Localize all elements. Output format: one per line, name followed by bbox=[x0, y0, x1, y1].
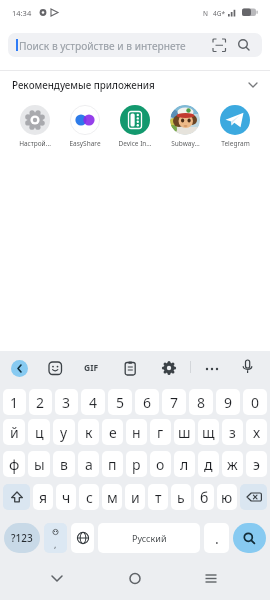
button[interactable]: б bbox=[194, 484, 214, 510]
button[interactable]: г bbox=[150, 419, 171, 445]
staticText: 9 bbox=[224, 393, 233, 412]
button[interactable]: ь bbox=[171, 484, 191, 510]
button[interactable]: EasyShare bbox=[60, 100, 110, 155]
staticText: у bbox=[60, 423, 68, 442]
button[interactable]: у bbox=[53, 419, 75, 445]
button[interactable]: ю bbox=[217, 484, 237, 510]
button[interactable]: 1 bbox=[3, 389, 26, 415]
button[interactable]: в bbox=[53, 451, 75, 477]
staticText: г bbox=[157, 423, 164, 442]
button[interactable]: 7 bbox=[162, 389, 186, 415]
staticText: Subway... bbox=[171, 139, 200, 148]
button[interactable]: Device In... bbox=[110, 100, 160, 155]
button[interactable] bbox=[240, 359, 255, 376]
staticText: Telegram bbox=[221, 139, 250, 148]
button[interactable]: э bbox=[246, 451, 267, 477]
staticText: х bbox=[253, 423, 261, 442]
button[interactable]: я bbox=[33, 484, 53, 510]
button[interactable]: с bbox=[79, 484, 99, 510]
button[interactable] bbox=[123, 361, 138, 376]
button[interactable]: 5 bbox=[108, 389, 132, 415]
button[interactable]: и bbox=[125, 484, 145, 510]
button[interactable]: ф bbox=[3, 451, 25, 477]
staticText: 8 bbox=[197, 393, 206, 412]
button[interactable]: д bbox=[198, 451, 219, 477]
staticText: 2 bbox=[36, 393, 45, 412]
staticText: 7 bbox=[170, 393, 179, 412]
button[interactable]: х bbox=[246, 419, 267, 445]
staticText: 14:34 bbox=[12, 8, 32, 18]
button[interactable]: ы bbox=[28, 451, 50, 477]
button[interactable] bbox=[203, 360, 221, 378]
staticText: , bbox=[54, 538, 57, 550]
button[interactable] bbox=[240, 484, 267, 510]
button[interactable]: 0 bbox=[243, 389, 267, 415]
staticText: ж bbox=[227, 455, 238, 474]
staticText: и bbox=[131, 488, 140, 507]
button[interactable]: 8 bbox=[189, 389, 213, 415]
staticText: 4 bbox=[89, 393, 98, 412]
staticText: 5 bbox=[116, 393, 125, 412]
button[interactable] bbox=[161, 360, 177, 376]
button[interactable]: 3 bbox=[55, 389, 78, 415]
staticText: ь bbox=[177, 488, 185, 507]
button[interactable]: 6 bbox=[135, 389, 159, 415]
button[interactable]: к bbox=[78, 419, 99, 445]
staticText: н bbox=[132, 423, 141, 442]
button[interactable] bbox=[47, 568, 67, 588]
button[interactable]: 9 bbox=[216, 389, 240, 415]
button[interactable]: н bbox=[126, 419, 147, 445]
staticText: 3 bbox=[62, 393, 71, 412]
staticText: ц bbox=[35, 423, 44, 442]
button[interactable]: , bbox=[44, 523, 67, 553]
button[interactable]: ж bbox=[222, 451, 243, 477]
staticText: й bbox=[10, 423, 19, 442]
staticText: 4G* bbox=[213, 9, 226, 18]
button[interactable]: Русский bbox=[98, 523, 200, 553]
button[interactable]: щ bbox=[198, 419, 219, 445]
button[interactable]: Поиск в устройстве и в интернете bbox=[8, 33, 262, 57]
button[interactable] bbox=[48, 361, 63, 376]
staticText: а bbox=[85, 455, 93, 474]
button[interactable]: з bbox=[222, 419, 243, 445]
button[interactable]: о bbox=[150, 451, 171, 477]
button[interactable] bbox=[3, 484, 30, 510]
button[interactable]: м bbox=[102, 484, 122, 510]
button[interactable]: р bbox=[126, 451, 147, 477]
button[interactable]: ц bbox=[28, 419, 50, 445]
staticText: о bbox=[156, 455, 165, 474]
button[interactable]: ч bbox=[56, 484, 76, 510]
staticText: б bbox=[200, 488, 209, 507]
button[interactable]: л bbox=[174, 451, 195, 477]
button[interactable]: ш bbox=[174, 419, 195, 445]
staticText: . bbox=[215, 529, 219, 548]
button[interactable]: 4 bbox=[81, 389, 105, 415]
staticText: Device In... bbox=[118, 139, 152, 148]
staticText: ?123 bbox=[11, 531, 33, 545]
button[interactable]: 2 bbox=[29, 389, 52, 415]
staticText: GIF bbox=[84, 362, 99, 374]
button[interactable]: . bbox=[204, 523, 229, 553]
staticText: р bbox=[132, 455, 141, 474]
staticText: п bbox=[108, 455, 117, 474]
button[interactable] bbox=[201, 568, 221, 588]
staticText: ч bbox=[62, 488, 71, 507]
staticText: 6 bbox=[143, 393, 152, 412]
button[interactable]: Telegram bbox=[210, 100, 260, 155]
button[interactable]: т bbox=[148, 484, 168, 510]
staticText: Настрой... bbox=[19, 139, 51, 148]
button[interactable]: п bbox=[102, 451, 123, 477]
button[interactable]: й bbox=[3, 419, 25, 445]
button[interactable] bbox=[71, 523, 94, 553]
button[interactable]: Настрой... bbox=[10, 100, 60, 155]
button[interactable]: Subway... bbox=[160, 100, 210, 155]
button[interactable]: а bbox=[78, 451, 99, 477]
button[interactable] bbox=[125, 568, 145, 588]
button[interactable]: GIF bbox=[80, 357, 102, 379]
staticText: д bbox=[204, 455, 213, 474]
staticText: в bbox=[60, 455, 68, 474]
button[interactable] bbox=[233, 523, 266, 553]
button[interactable] bbox=[11, 360, 28, 377]
button[interactable]: ?123 bbox=[4, 523, 40, 553]
button[interactable]: е bbox=[102, 419, 123, 445]
